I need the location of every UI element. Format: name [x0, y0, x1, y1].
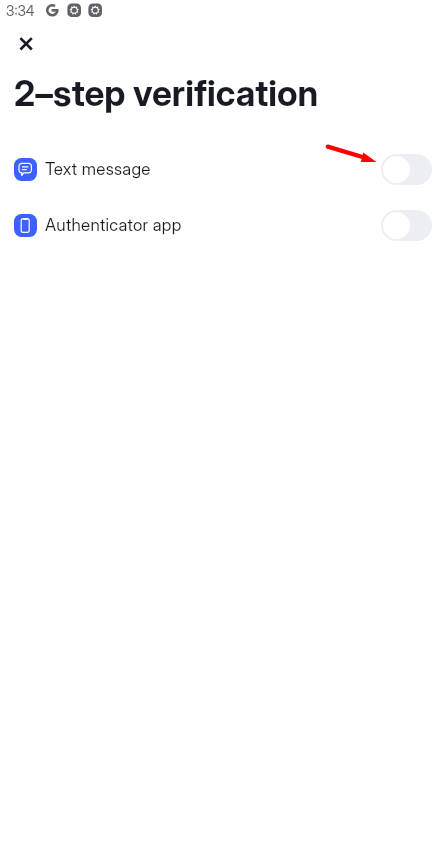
button[interactable]: Toggle off: [381, 210, 432, 241]
staticText: 2–step verification: [14, 72, 319, 115]
button[interactable]: Toggle off: [381, 154, 432, 185]
button[interactable]: Authenticator app: [0, 197, 445, 253]
staticText: 3:34: [6, 2, 35, 19]
staticText: Authenticator app: [45, 215, 182, 236]
button[interactable]: Close: [3, 21, 48, 66]
staticText: Text message: [45, 159, 151, 180]
button[interactable]: Text message: [0, 141, 445, 197]
